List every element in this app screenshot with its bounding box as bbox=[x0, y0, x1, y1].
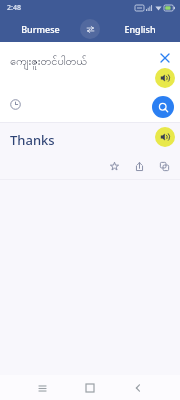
button[interactable]: Clear text bbox=[158, 51, 172, 65]
button[interactable]: English bbox=[100, 16, 180, 42]
staticText: ကျေးဇူးတင်ပါတယ် bbox=[10, 54, 87, 70]
button[interactable]: Home bbox=[78, 376, 102, 400]
button[interactable]: Search bbox=[152, 96, 174, 118]
button[interactable]: Save translation bbox=[107, 159, 122, 174]
button[interactable]: Back bbox=[126, 376, 150, 400]
staticText: Burmese bbox=[21, 23, 60, 35]
staticText: 2:48 bbox=[7, 3, 21, 13]
button[interactable]: Swap languages bbox=[80, 19, 100, 39]
staticText: English bbox=[124, 23, 156, 35]
button[interactable]: Copy bbox=[157, 159, 172, 174]
staticText: Thanks bbox=[10, 131, 55, 149]
button[interactable]: Share bbox=[132, 159, 147, 174]
button[interactable]: Burmese bbox=[0, 16, 80, 42]
button[interactable]: Recents bbox=[30, 376, 54, 400]
button[interactable]: Listen bbox=[155, 127, 175, 147]
button[interactable]: History bbox=[7, 96, 23, 112]
button[interactable]: Listen bbox=[155, 68, 175, 88]
